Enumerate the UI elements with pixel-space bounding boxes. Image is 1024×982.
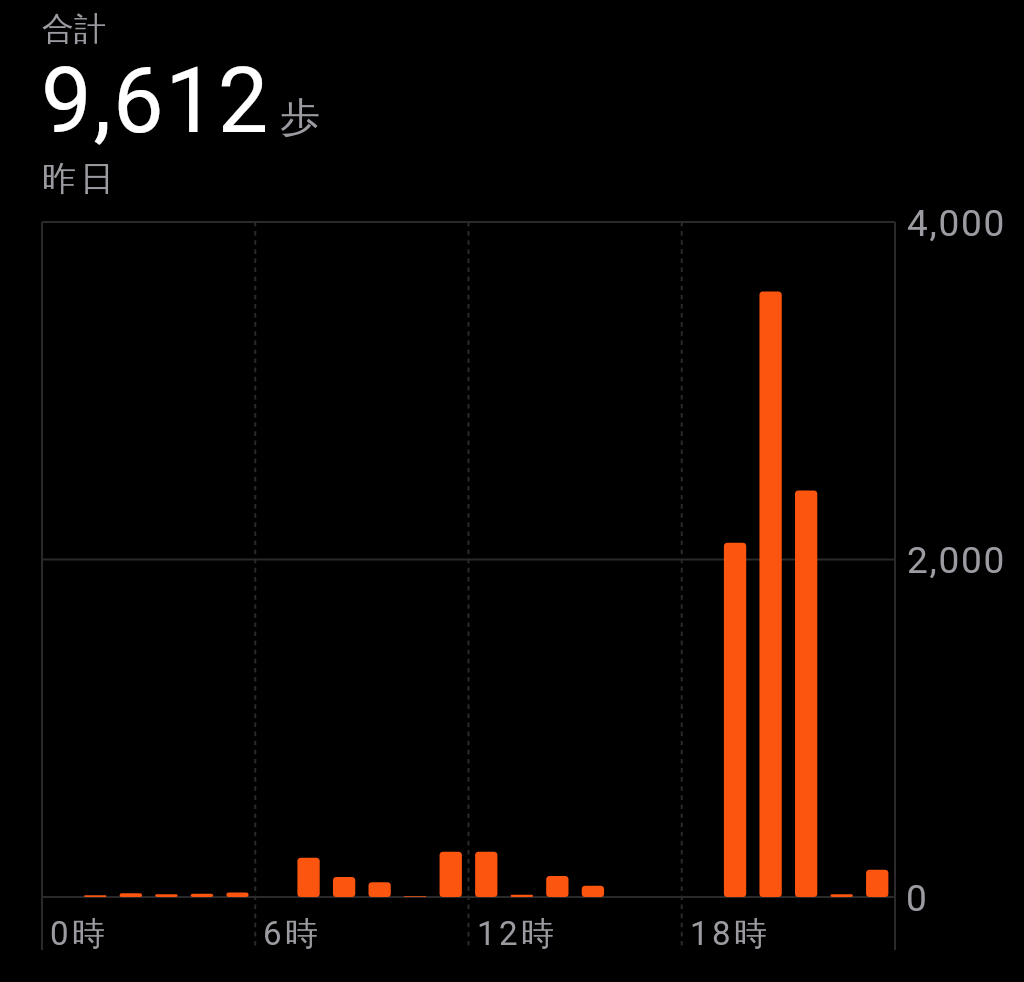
other: Hourly step count chart [0, 0, 1024, 982]
staticText: 0 [906, 877, 929, 920]
staticText: 0時 [50, 913, 109, 955]
staticText: 2,000 [907, 539, 1006, 582]
staticText: 6時 [263, 913, 322, 955]
staticText: 9,612 [41, 49, 271, 154]
staticText: 歩 [280, 92, 320, 142]
staticText: 18時 [690, 913, 771, 955]
staticText: 12時 [477, 913, 558, 955]
button[interactable]: 合計 [30, 4, 330, 204]
staticText: 合計 [42, 9, 106, 49]
staticText: 昨日 [40, 157, 116, 200]
staticText: 4,000 [907, 202, 1006, 245]
